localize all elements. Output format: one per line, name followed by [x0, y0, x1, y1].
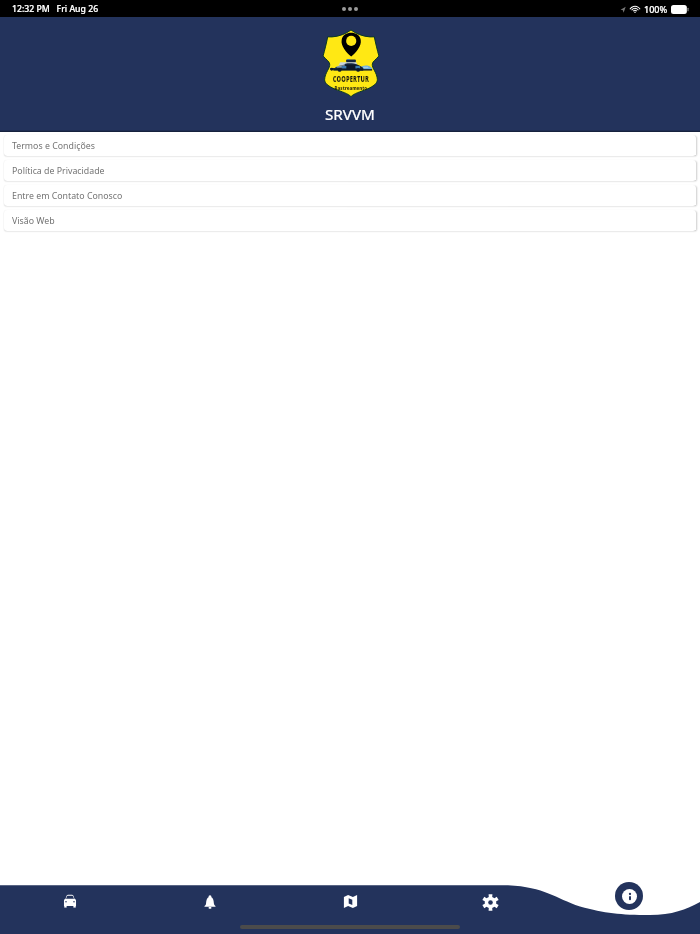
staticText: 12:32 PM Fri Aug 26 [12, 3, 99, 15]
button[interactable]: Política de Privacidade [4, 160, 696, 181]
staticText: Visão Web [12, 215, 55, 227]
staticText: Termos e Condições [12, 140, 95, 152]
staticText: Política de Privacidade [12, 165, 105, 177]
button[interactable]: Visão Web [4, 210, 696, 231]
staticText: 100% [644, 3, 668, 15]
button[interactable]: Entre em Contato Conosco [4, 185, 696, 206]
button[interactable]: Vehicles [0, 894, 140, 908]
button[interactable]: Settings [420, 894, 560, 911]
staticText: SRVVM [325, 104, 375, 125]
staticText: Rastreamento [335, 84, 367, 91]
button[interactable]: Termos e Condições [4, 135, 696, 156]
button[interactable]: Notifications [140, 894, 280, 910]
staticText: COOPERTUR [333, 73, 369, 84]
staticText: Entre em Contato Conosco [12, 190, 123, 202]
button[interactable]: Info [615, 882, 643, 910]
button[interactable]: Map [280, 894, 420, 909]
